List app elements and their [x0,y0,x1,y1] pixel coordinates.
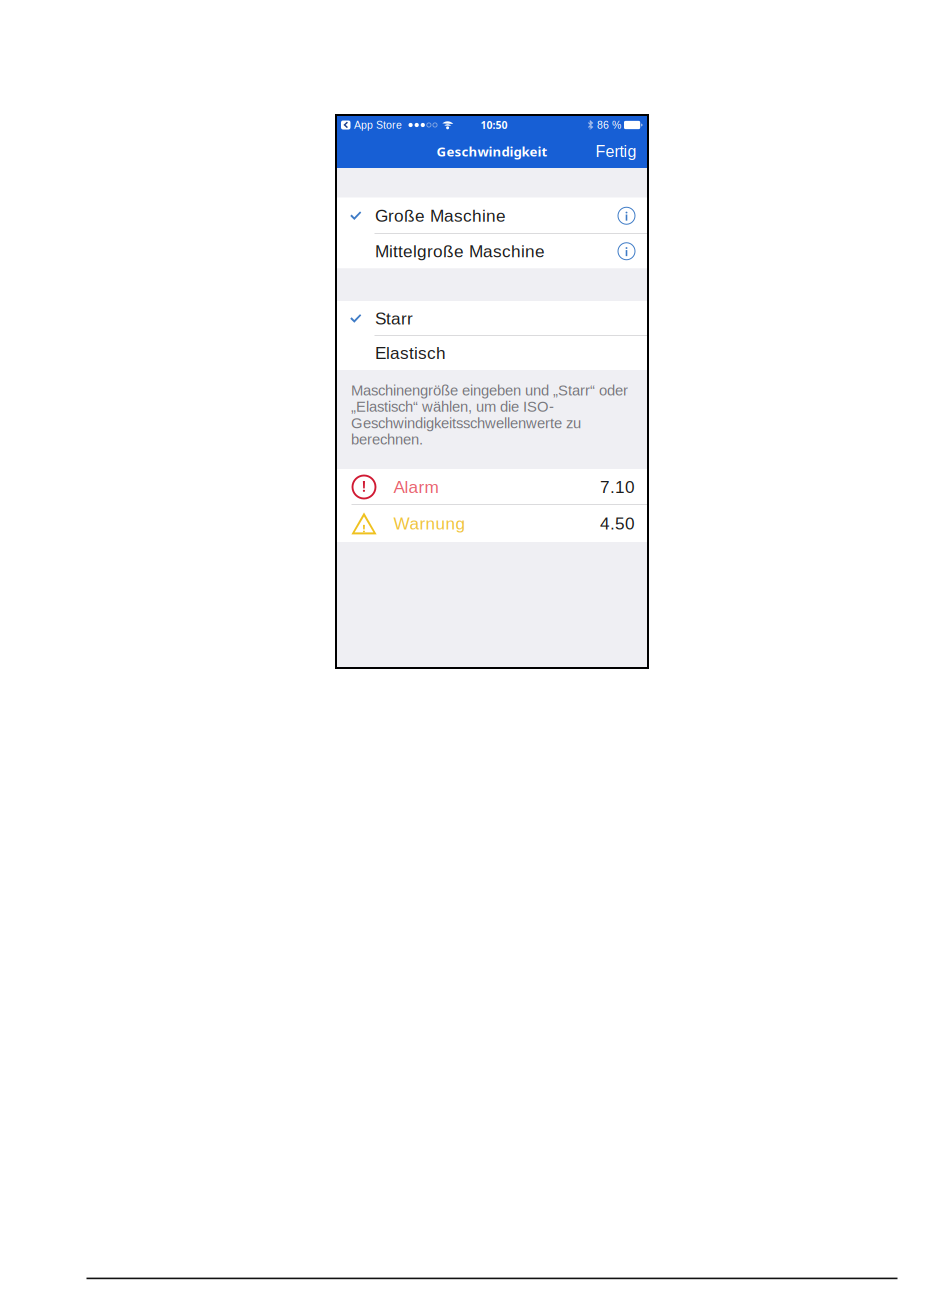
staticText: Warnung [393,514,465,533]
staticText: 10:50 [480,118,507,132]
staticText: berechnen. [351,431,423,448]
button[interactable]: Elastisch [336,336,648,370]
staticText: Starr [375,309,413,328]
button[interactable]: Fertig [589,136,642,167]
button[interactable]: Starr [336,301,648,336]
button[interactable]: Alarm [336,469,648,505]
staticText: Fertig [595,143,636,160]
staticText: 4.50 [600,514,635,533]
button[interactable]: Große Maschine [336,197,648,234]
staticText: App Store [354,119,402,131]
staticText: Geschwindigkeitsschwellenwerte zu [351,415,581,431]
staticText: Alarm [393,477,438,497]
staticText: Maschinengröße eingeben und „Starr“ oder [351,382,628,398]
button[interactable]: Mittelgroße Maschine [336,234,648,268]
button[interactable]: Warnung [336,505,648,542]
staticText: Mittelgroße Maschine [375,242,545,261]
staticText: Elastisch [375,343,446,363]
staticText: Große Maschine [375,206,506,225]
staticText: 7.10 [600,477,635,497]
staticText: 86 % [597,119,621,131]
staticText: Geschwindigkeit [436,142,547,160]
staticText: „Elastisch“ wählen, um die ISO- [351,398,554,415]
